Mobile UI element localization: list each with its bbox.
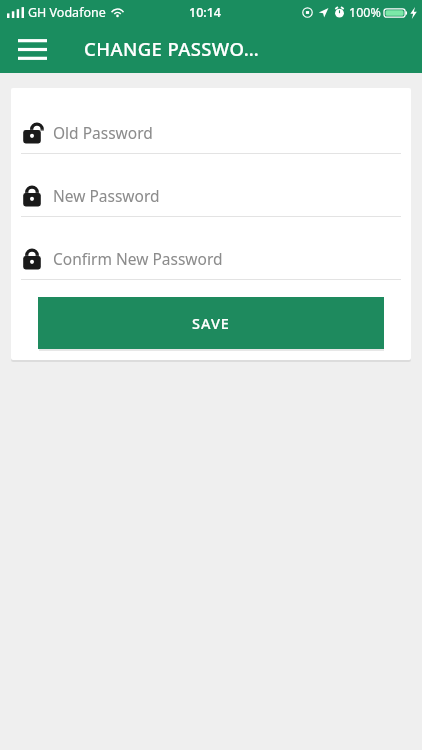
staticText: GH Vodafone <box>28 4 106 21</box>
staticText: New Password <box>53 185 160 206</box>
staticText: Old Password <box>53 122 153 143</box>
button[interactable]: Old Password <box>21 116 401 148</box>
staticText: SAVE <box>192 313 230 333</box>
button[interactable]: Open navigation menu <box>8 25 56 73</box>
button[interactable]: Confirm New Password <box>21 242 401 274</box>
staticText: 10:14 <box>189 4 222 21</box>
button[interactable]: SAVE <box>38 297 384 349</box>
staticText: 100% <box>349 4 381 21</box>
staticText: Confirm New Password <box>53 248 223 269</box>
staticText: CHANGE PASSWO… <box>84 36 260 61</box>
button[interactable]: New Password <box>21 179 401 211</box>
